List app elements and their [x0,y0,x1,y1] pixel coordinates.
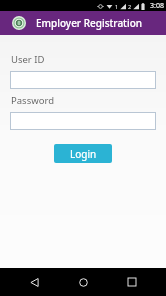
button[interactable]: Home [68,268,98,296]
staticText: Password [11,94,54,107]
staticText: 3:08 [150,1,164,11]
button[interactable]: Back [19,268,49,296]
button[interactable] [10,71,156,89]
staticText: 1 [115,3,119,10]
staticText: Employer Registration [36,16,143,30]
button[interactable]: Login [54,144,112,163]
staticText: User ID [11,53,45,66]
other: App logo [12,16,26,30]
button[interactable]: Recent apps [117,268,147,296]
staticText: Login [70,147,97,161]
staticText: 2 [128,3,132,10]
button[interactable] [10,112,156,130]
